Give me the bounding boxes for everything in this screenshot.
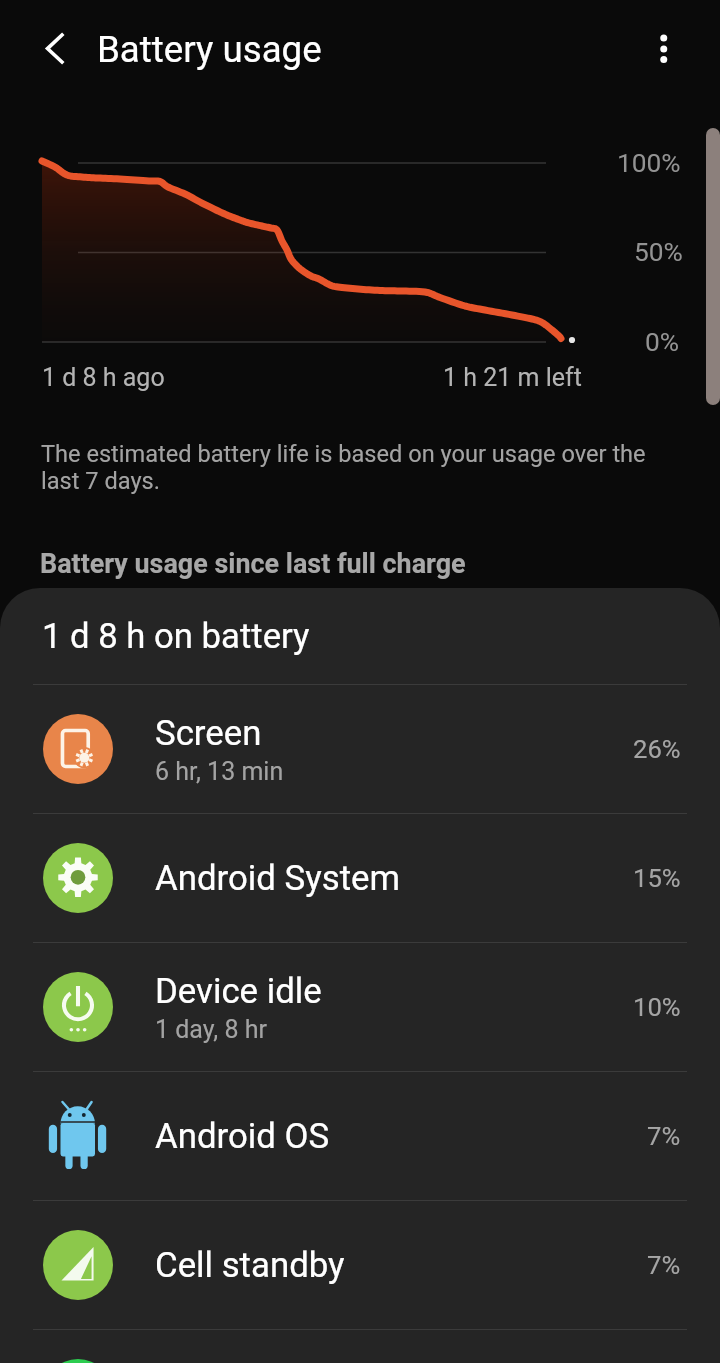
staticText: 6 hr, 13 min — [155, 757, 284, 786]
staticText: Screen — [155, 713, 262, 754]
staticText: 100% — [617, 148, 681, 179]
staticText: Device idle — [155, 971, 322, 1012]
button[interactable]: Cell standby — [0, 1201, 720, 1329]
staticText: The estimated battery life is based on y… — [41, 440, 646, 495]
staticText: Android System — [155, 858, 400, 899]
button[interactable]: Screen — [0, 685, 720, 813]
button[interactable]: Device idle — [0, 943, 720, 1071]
button[interactable]: More options — [628, 13, 700, 85]
button[interactable]: WhatsApp — [0, 1330, 720, 1363]
staticText: 1 d 8 h on battery — [42, 616, 310, 657]
button[interactable]: Android System — [0, 814, 720, 942]
staticText: 1 d 8 h ago — [42, 363, 165, 392]
staticText: Battery usage — [97, 28, 322, 71]
staticText: 7% — [647, 1250, 681, 1280]
button[interactable]: Back — [13, 13, 85, 85]
staticText: Android OS — [155, 1116, 330, 1157]
staticText: 0% — [645, 327, 680, 358]
staticText: 1 h 21 m left — [443, 363, 582, 392]
staticText: 50% — [634, 237, 683, 268]
staticText: 1 day, 8 hr — [155, 1015, 267, 1044]
staticText: 15% — [633, 863, 681, 893]
staticText: 7% — [647, 1121, 681, 1151]
staticText: Cell standby — [155, 1245, 345, 1286]
staticText: 10% — [633, 992, 681, 1022]
staticText: 26% — [633, 734, 681, 764]
staticText: Battery usage since last full charge — [40, 548, 466, 580]
button[interactable]: Android OS — [0, 1072, 720, 1200]
